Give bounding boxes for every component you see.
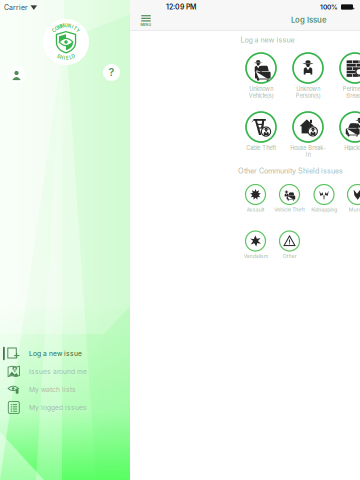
button[interactable]: Perimeter Breach	[333, 53, 360, 101]
staticText: T	[74, 26, 77, 31]
button[interactable]: My watch lists	[0, 380, 130, 398]
button[interactable]: Hijacking	[333, 112, 360, 160]
button[interactable]: Unknown Vehicle(s)	[239, 53, 283, 101]
button[interactable]: Kidnapping	[308, 184, 340, 216]
staticText: My logged issues	[29, 403, 87, 412]
button[interactable]: Vehicle Theft	[273, 184, 305, 216]
button[interactable]: Log a new issue	[0, 344, 130, 362]
staticText: Kidnapping	[311, 206, 337, 213]
staticText: 100%	[320, 3, 338, 11]
staticText: Unknown Person(s)	[295, 85, 320, 99]
button[interactable]: Assault	[239, 184, 271, 216]
staticText: Y	[76, 28, 79, 33]
staticText: Other	[282, 253, 296, 259]
staticText: M	[58, 24, 62, 30]
staticText: D	[72, 54, 75, 59]
staticText: Unknown Vehicle(s)	[248, 85, 273, 99]
staticText: Vehicle Theft	[274, 206, 305, 213]
button[interactable]: Other	[273, 231, 305, 263]
staticText: N	[68, 23, 71, 29]
staticText: Other Community Shield issues	[238, 166, 343, 175]
staticText: O	[55, 26, 58, 31]
staticText: H	[60, 55, 63, 60]
staticText: C	[53, 28, 56, 33]
button[interactable]: Vandalism	[239, 231, 271, 263]
staticText: I	[64, 56, 65, 61]
staticText: Cable Theft	[246, 144, 276, 151]
staticText: L	[70, 55, 72, 60]
staticText: Log a new issue	[240, 35, 294, 44]
button[interactable]: Menu	[135, 14, 157, 28]
staticText: E	[66, 56, 69, 61]
staticText: Perimeter Breach	[342, 85, 360, 99]
staticText: I	[72, 24, 73, 30]
button[interactable]: House Break- In	[286, 112, 330, 160]
staticText: S	[57, 54, 60, 59]
button[interactable]: Help	[103, 64, 120, 81]
button[interactable]: Issues around me	[0, 362, 130, 380]
staticText: House Break- In	[290, 144, 326, 158]
staticText: Hijacking	[344, 144, 360, 151]
staticText: ?	[108, 66, 114, 79]
button[interactable]: Unknown Person(s)	[286, 53, 330, 101]
staticText: Log Issue	[291, 15, 327, 25]
staticText: MENU	[140, 22, 151, 27]
staticText: Murder	[348, 206, 360, 213]
staticText: Carrier	[4, 3, 28, 12]
staticText: Issues around me	[29, 367, 87, 376]
button[interactable]: My logged issues	[0, 398, 130, 416]
staticText: Vandalism	[243, 253, 267, 259]
staticText: My watch lists	[29, 385, 76, 394]
button[interactable]: Cable Theft	[239, 112, 283, 160]
staticText: Log a new issue	[29, 349, 82, 358]
staticText: U	[64, 23, 67, 28]
button[interactable]: Profile	[8, 66, 25, 83]
button[interactable]: Murder	[341, 184, 360, 216]
staticText: Assault	[246, 206, 264, 213]
staticText: 12:09 PM	[166, 3, 196, 11]
staticText: M	[61, 23, 65, 29]
